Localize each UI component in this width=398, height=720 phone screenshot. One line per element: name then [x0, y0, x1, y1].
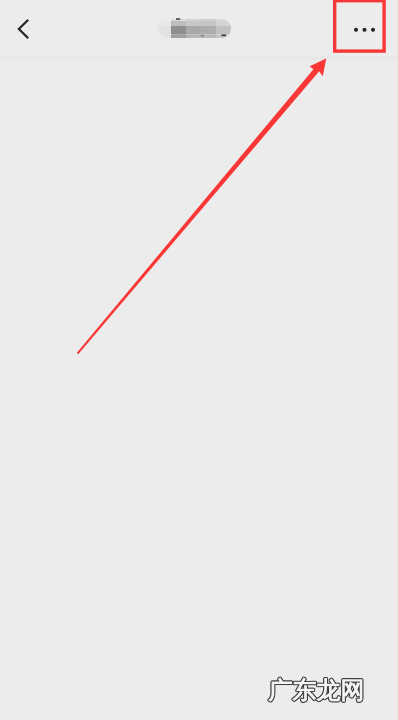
staticText: 广东龙网 — [268, 676, 364, 705]
button[interactable]: More options — [341, 5, 387, 55]
button[interactable]: Back — [1, 4, 45, 54]
